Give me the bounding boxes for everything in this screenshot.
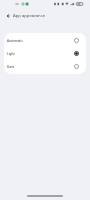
staticText: Automatic — [7, 39, 23, 43]
button[interactable]: Back — [3, 11, 13, 21]
staticText: App appearance — [13, 13, 46, 19]
button[interactable]: Dark — [4, 60, 86, 73]
button[interactable]: Light — [4, 47, 86, 60]
button[interactable]: Automatic — [4, 34, 86, 47]
staticText: Light — [7, 52, 15, 56]
staticText: Dark — [7, 65, 15, 69]
